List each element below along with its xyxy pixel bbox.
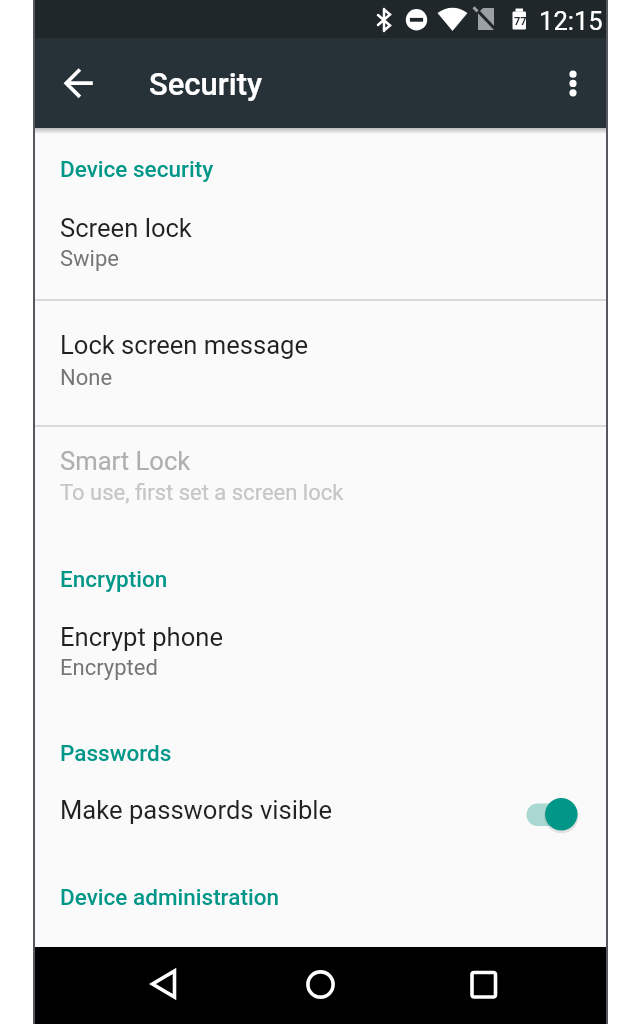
button[interactable]: Make passwords visible xyxy=(33,775,608,857)
staticText: None xyxy=(60,365,113,391)
button[interactable] xyxy=(547,54,595,118)
staticText: Encrypt phone xyxy=(60,622,223,652)
button[interactable]: Lock screen message xyxy=(33,301,608,425)
button[interactable] xyxy=(384,947,512,1024)
staticText: Device security xyxy=(60,156,214,182)
staticText: Encryption xyxy=(60,566,168,592)
button[interactable]: Smart Lock xyxy=(33,427,608,542)
staticText: Passwords xyxy=(60,740,172,766)
staticText: Make passwords visible xyxy=(60,795,333,825)
staticText: 12:15 xyxy=(539,6,603,36)
staticText: 77 xyxy=(514,15,527,28)
button[interactable] xyxy=(41,54,105,118)
button[interactable]: Encrypt phone xyxy=(33,605,608,705)
staticText: To use, first set a screen lock xyxy=(60,480,344,506)
staticText: Device administration xyxy=(60,884,279,910)
staticText: Swipe xyxy=(60,246,119,272)
button[interactable] xyxy=(256,947,384,1024)
staticText: Screen lock xyxy=(60,213,192,243)
staticText: Encrypted xyxy=(60,655,158,681)
button[interactable]: Screen lock xyxy=(33,196,608,299)
staticText: Lock screen message xyxy=(60,330,309,360)
staticText: Smart Lock xyxy=(60,446,191,476)
button[interactable] xyxy=(517,792,587,840)
button[interactable] xyxy=(128,947,256,1024)
staticText: Security xyxy=(149,66,263,102)
